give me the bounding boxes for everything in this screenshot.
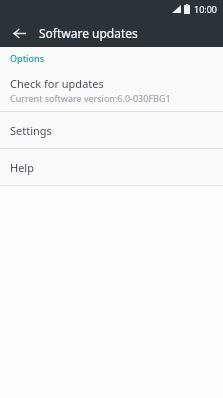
button[interactable]: Back: [8, 22, 30, 44]
button[interactable]: Help: [0, 149, 223, 185]
staticText: 10:00: [194, 3, 218, 15]
button[interactable]: Check for updates: [0, 69, 223, 111]
button[interactable]: Settings: [0, 112, 223, 148]
staticText: Check for updates: [10, 76, 104, 91]
staticText: Current software version:6.0-030FBG1: [10, 92, 171, 104]
staticText: Options: [10, 52, 45, 64]
staticText: Help: [10, 160, 34, 175]
staticText: Settings: [10, 123, 52, 138]
staticText: Software updates: [39, 25, 138, 41]
